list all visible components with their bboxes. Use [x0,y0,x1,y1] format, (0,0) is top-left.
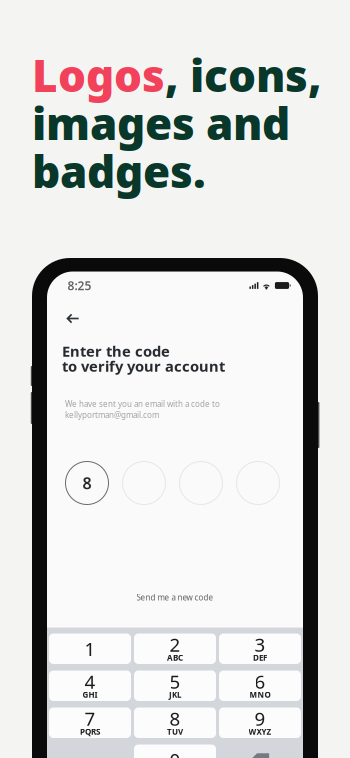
staticText: kellyportman@gmail.com [65,410,159,420]
staticText: 6 [254,669,265,694]
staticText: PQRS [80,726,100,737]
button[interactable]: 7 [49,707,131,738]
button[interactable]: 2 [134,633,216,664]
staticText: 8 [169,706,180,731]
staticText: TUV [167,726,183,737]
button[interactable]: 1 [49,633,131,664]
staticText: Send me a new code [136,592,213,603]
staticText: to verify your account [62,356,225,376]
staticText: 9 [254,706,265,731]
staticText: 1 [84,636,95,661]
button[interactable]: Code digit 8 [65,461,108,504]
staticText: Enter the code [62,341,170,361]
staticText: ABC [167,652,183,663]
staticText: badges. [32,142,206,200]
button[interactable]: 0 [134,744,216,758]
staticText: 7 [84,706,95,731]
staticText: 3 [254,632,265,657]
button[interactable]: Empty code digit [179,461,222,504]
staticText: 4 [84,669,95,694]
button[interactable]: Delete [219,744,301,758]
staticText: We have sent you an email with a code to [65,399,220,409]
button[interactable]: Empty code digit [236,461,279,504]
staticText: WXYZ [248,726,271,737]
staticText: 0 [169,747,180,758]
button[interactable]: 4 [49,670,131,701]
button[interactable]: 5 [134,670,216,701]
staticText: images and [32,94,290,152]
staticText: , icons, [165,46,322,104]
button[interactable]: 3 [219,633,301,664]
staticText: 2 [169,632,180,657]
staticText: MNO [249,689,270,700]
button[interactable]: Send me a new code [47,589,303,605]
button[interactable]: 8 [134,707,216,738]
button[interactable]: Back [61,309,83,327]
staticText: 8:25 [67,277,91,293]
staticText: JKL [169,689,181,700]
staticText: Logos [32,46,165,104]
staticText: 5 [169,669,180,694]
staticText: DEF [253,652,267,663]
button[interactable]: 6 [219,670,301,701]
staticText: GHI [82,689,97,700]
button[interactable]: Empty code digit [122,461,165,504]
button[interactable]: 9 [219,707,301,738]
staticText: 8 [82,472,91,494]
